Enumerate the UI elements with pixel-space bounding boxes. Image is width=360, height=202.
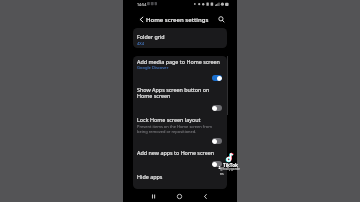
button[interactable]: Back bbox=[202, 193, 208, 199]
button[interactable]: Switch on bbox=[212, 75, 222, 81]
staticText: Add new apps to Home screen bbox=[137, 149, 215, 156]
staticText: Show Apps screen button on Home screen bbox=[137, 86, 210, 100]
button[interactable]: Hide apps bbox=[133, 174, 227, 187]
staticText: Prevent items on the Home screen from be… bbox=[137, 124, 212, 135]
button[interactable]: Back bbox=[136, 14, 147, 25]
button[interactable]: Lock Home screen layout bbox=[133, 113, 227, 148]
staticText: Google Discover bbox=[137, 65, 169, 71]
staticText: Add media page to Home screen bbox=[137, 58, 220, 65]
button[interactable]: Show Apps screen button on Home screen bbox=[133, 83, 227, 113]
button[interactable]: Search bbox=[216, 14, 227, 25]
button[interactable]: Folder grid bbox=[133, 28, 227, 48]
button[interactable]: Recents bbox=[150, 193, 156, 199]
staticText: 4X4 bbox=[137, 41, 145, 47]
staticText: @hollygardens bbox=[220, 166, 242, 176]
staticText: Hide apps bbox=[137, 173, 163, 180]
button[interactable]: Home bbox=[176, 193, 182, 199]
staticText: TikTok bbox=[223, 162, 238, 168]
staticText: 14:54 bbox=[137, 2, 147, 7]
button[interactable]: Switch off bbox=[212, 138, 222, 144]
button[interactable]: Add media page to Home screen bbox=[133, 56, 227, 83]
staticText: Home screen settings bbox=[146, 16, 209, 24]
staticText: Lock Home screen layout bbox=[137, 116, 201, 123]
staticText: Folder grid bbox=[137, 33, 165, 40]
button[interactable]: Add new apps to Home screen bbox=[133, 148, 227, 174]
button[interactable]: Switch off bbox=[212, 161, 222, 167]
button[interactable]: Switch off bbox=[212, 105, 222, 111]
